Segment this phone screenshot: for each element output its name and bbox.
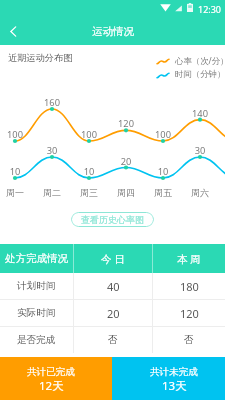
- staticText: 120: [180, 306, 199, 321]
- staticText: 10: [4, 165, 26, 178]
- staticText: 本 周: [177, 252, 201, 266]
- button[interactable]: Back: [0, 18, 27, 45]
- button[interactable]: 共计未完成: [112, 357, 225, 400]
- staticText: 时间（分钟）: [175, 69, 225, 80]
- staticText: 周四: [113, 187, 139, 198]
- button[interactable]: 今 日: [74, 244, 152, 273]
- staticText: 10: [152, 165, 174, 178]
- staticText: 120: [115, 117, 137, 130]
- staticText: 周二: [39, 187, 65, 198]
- staticText: 12天: [39, 378, 64, 394]
- staticText: 140: [189, 107, 211, 120]
- staticText: 10: [78, 165, 100, 178]
- staticText: 否: [108, 334, 118, 346]
- staticText: 今 日: [101, 252, 125, 266]
- staticText: 查看历史心率图: [81, 214, 144, 225]
- staticText: 实际时间: [17, 307, 56, 319]
- button[interactable]: 本 周: [153, 244, 225, 273]
- staticText: 共计已完成: [27, 366, 75, 378]
- staticText: 心率（次/分）: [175, 55, 225, 66]
- staticText: 处方完成情况: [5, 252, 68, 265]
- staticText: 周六: [187, 187, 213, 198]
- staticText: 20: [107, 306, 120, 321]
- staticText: 是否完成: [17, 334, 56, 346]
- staticText: 运动情况: [92, 25, 134, 38]
- staticText: 180: [180, 279, 199, 294]
- button[interactable]: 共计已完成: [0, 357, 112, 400]
- staticText: 100: [4, 128, 26, 141]
- button[interactable]: 处方完成情况: [0, 244, 73, 273]
- staticText: 否: [184, 334, 194, 346]
- staticText: 近期运动分布图: [8, 52, 73, 64]
- staticText: 40: [107, 279, 120, 294]
- staticText: 30: [189, 144, 211, 157]
- staticText: 30: [41, 144, 63, 157]
- staticText: 100: [152, 128, 174, 141]
- button[interactable]: 查看历史心率图: [71, 212, 154, 227]
- staticText: 160: [41, 96, 63, 109]
- staticText: 13天: [162, 378, 187, 394]
- staticText: 周三: [76, 187, 102, 198]
- staticText: 计划时间: [17, 280, 56, 292]
- staticText: 共计未完成: [150, 366, 198, 378]
- staticText: 12:30: [198, 3, 222, 15]
- staticText: 20: [115, 155, 137, 168]
- staticText: 100: [78, 128, 100, 141]
- staticText: 周一: [2, 187, 28, 198]
- staticText: 周五: [150, 187, 176, 198]
